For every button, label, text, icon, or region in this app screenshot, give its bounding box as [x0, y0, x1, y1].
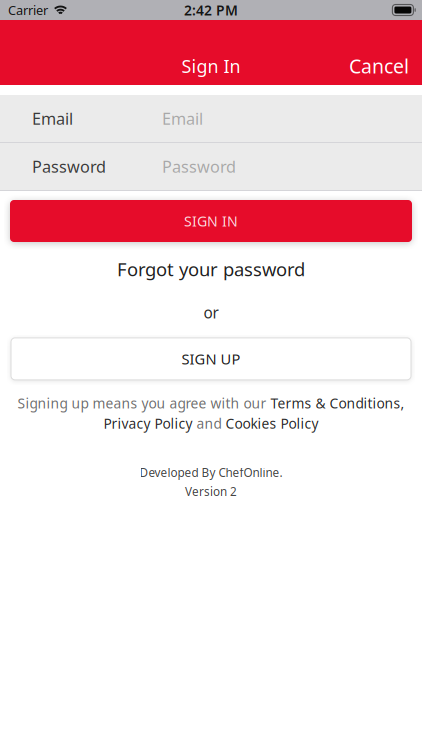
- staticText: Developed By ChefOnline.: [139, 464, 282, 480]
- button[interactable]: Forgot your password: [117, 254, 305, 284]
- staticText: Password: [162, 155, 236, 178]
- staticText: Privacy Policy and Cookies Policy: [103, 414, 318, 432]
- button[interactable]: SIGN UP: [11, 338, 411, 380]
- staticText: SIGN IN: [184, 211, 238, 231]
- staticText: or: [203, 302, 218, 323]
- staticText: Forgot your password: [117, 256, 305, 282]
- staticText: Password: [32, 155, 106, 178]
- staticText: Email: [32, 107, 73, 130]
- staticText: Signing up means you agree with our Term…: [17, 394, 404, 412]
- staticText: Email: [162, 107, 203, 130]
- button[interactable]: SIGN IN: [10, 200, 412, 242]
- button[interactable]: Privacy Policy and Cookies Policy: [103, 414, 318, 432]
- staticText: Sign In: [181, 54, 240, 78]
- staticText: 2:42 PM: [184, 1, 238, 19]
- staticText: Version 2: [185, 483, 237, 499]
- button[interactable]: Cancel: [327, 47, 422, 85]
- staticText: Carrier: [8, 1, 48, 19]
- staticText: SIGN UP: [181, 349, 240, 369]
- button[interactable]: Signing up means you agree with our Term…: [17, 394, 404, 412]
- staticText: Cancel: [349, 53, 409, 79]
